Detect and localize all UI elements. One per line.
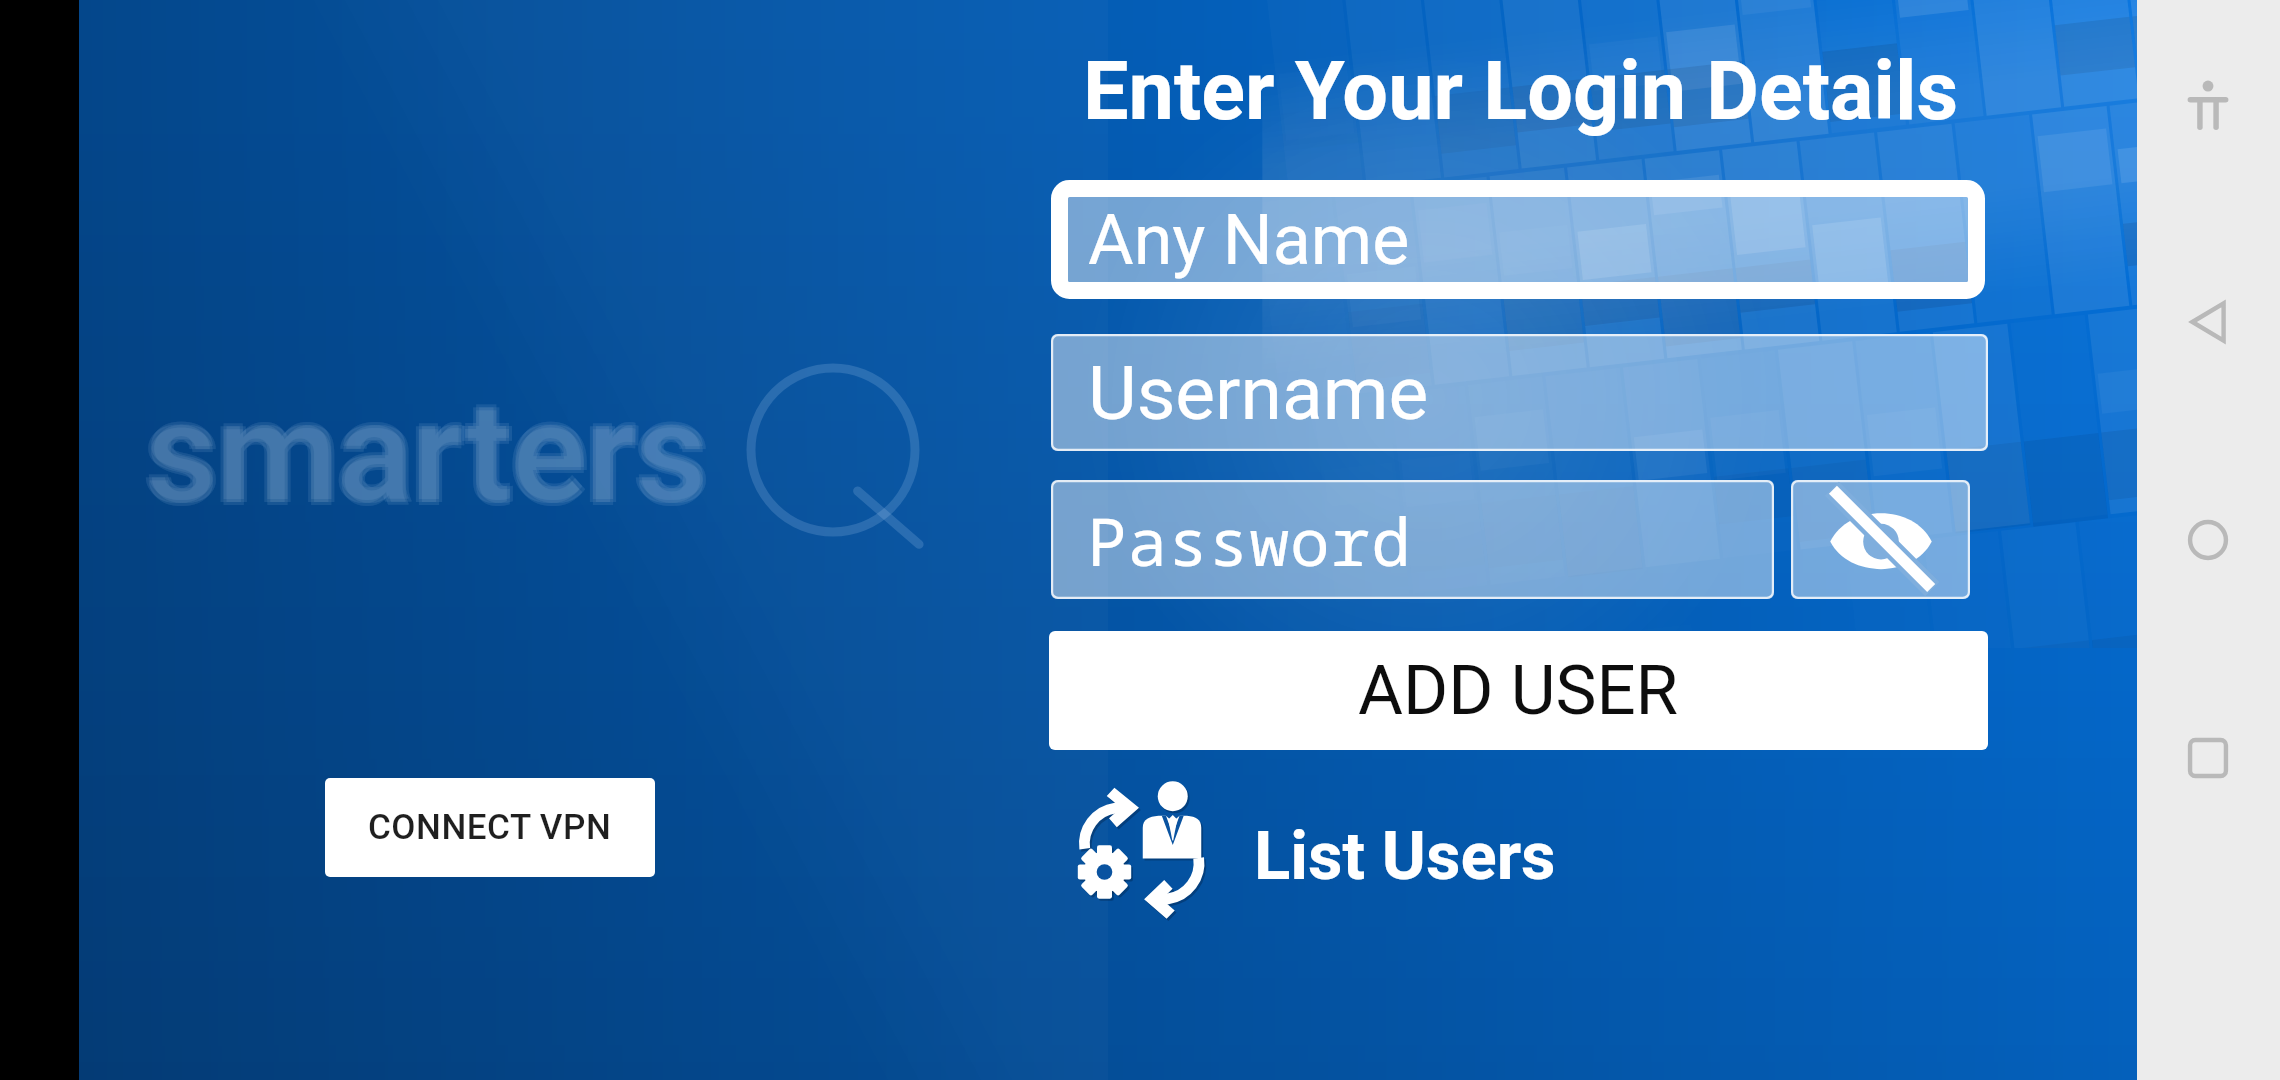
- staticText: Any Name: [1088, 199, 1410, 281]
- staticText: ADD USER: [1358, 650, 1679, 731]
- button[interactable]: Recent apps: [2148, 698, 2268, 818]
- button[interactable]: Home: [2148, 480, 2268, 600]
- staticText: Password: [1087, 495, 1412, 585]
- button[interactable]: Any Name: [1051, 180, 1985, 299]
- staticText: smarters: [145, 370, 707, 536]
- staticText: Username: [1088, 349, 1429, 437]
- button[interactable]: Back: [2148, 262, 2268, 382]
- staticText: List Users: [1254, 817, 1556, 896]
- button[interactable]: ADD USER: [1049, 631, 1988, 750]
- button[interactable]: List Users: [1068, 776, 1556, 936]
- staticText: CONNECT VPN: [368, 807, 612, 848]
- staticText: smarters: [145, 367, 707, 533]
- staticText: smarters: [142, 370, 704, 536]
- staticText: smarters: [148, 370, 710, 536]
- button[interactable]: Show password: [1791, 480, 1970, 599]
- button[interactable]: Username: [1051, 334, 1988, 451]
- staticText: Enter Your Login Details: [1083, 44, 1959, 139]
- button[interactable]: Password: [1051, 480, 1774, 599]
- staticText: smarters: [145, 373, 707, 539]
- button[interactable]: Accessibility: [2148, 45, 2268, 165]
- button[interactable]: CONNECT VPN: [325, 778, 655, 877]
